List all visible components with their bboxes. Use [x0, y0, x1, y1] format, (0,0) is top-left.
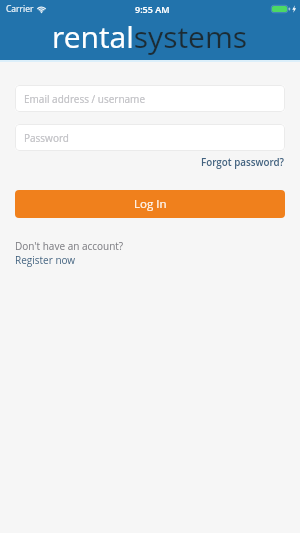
other: Battery charging	[271, 5, 297, 13]
staticText: Log In	[134, 196, 167, 212]
staticText: rentalsystems	[52, 16, 248, 56]
button[interactable]: Forgot password?	[199, 155, 287, 170]
staticText: 9:55 AM	[135, 3, 170, 15]
other: Wi-Fi	[36, 5, 47, 13]
staticText: Carrier	[6, 3, 34, 15]
staticText: Password	[24, 131, 69, 145]
button[interactable]: Log In	[15, 190, 285, 218]
button[interactable]: Password	[15, 124, 285, 151]
button[interactable]: Register now	[15, 253, 76, 267]
staticText: Email address / username	[24, 92, 146, 106]
button[interactable]: Email address / username	[15, 85, 285, 112]
staticText: Don't have an account?	[15, 239, 124, 253]
